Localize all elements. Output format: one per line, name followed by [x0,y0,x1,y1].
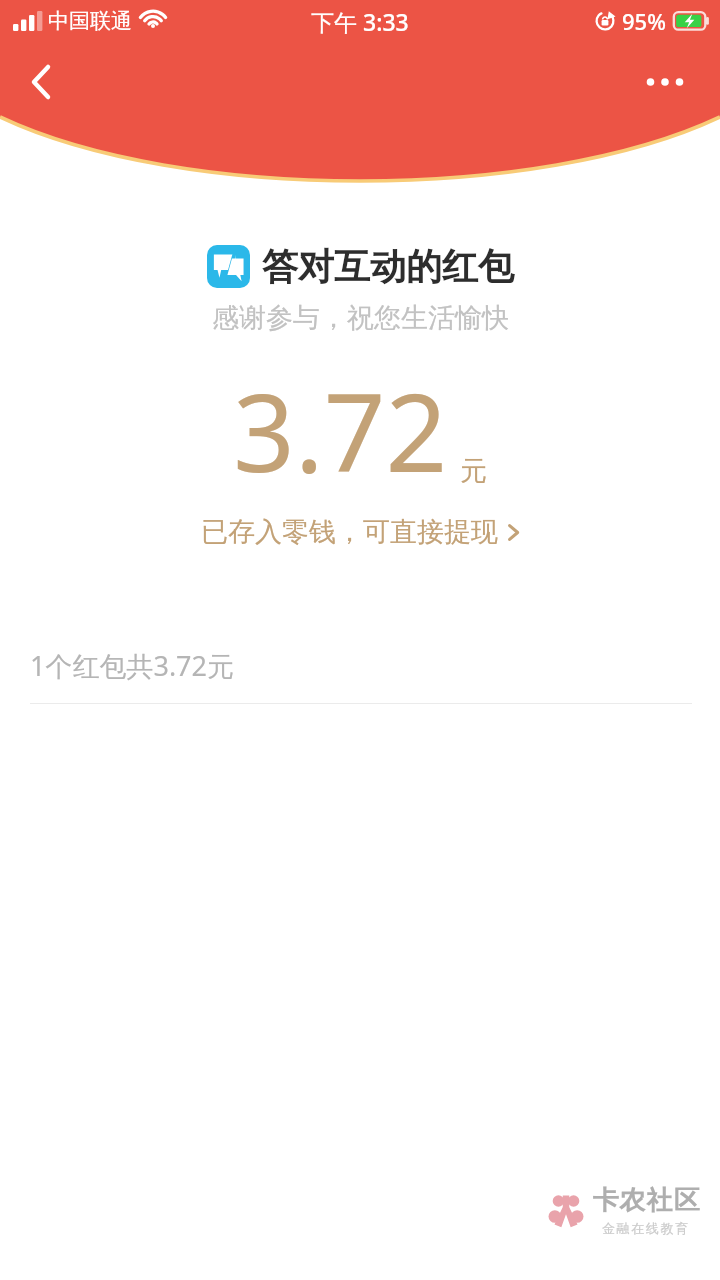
staticText: 已存入零钱，可直接提现 [201,515,498,549]
staticText: 中国联通 [48,8,132,34]
button[interactable]: 更多 [634,51,696,113]
staticText: 下午 3:33 [311,6,409,37]
staticText: 答对互动的红包 [262,244,514,289]
button[interactable]: 已存入零钱，可直接提现 [193,510,528,554]
staticText: 感谢参与，祝您生活愉快 [212,301,509,335]
staticText: 金融在线教育 [602,1220,690,1236]
button[interactable]: 返回 [10,51,72,113]
staticText: 3.72 [233,357,448,504]
staticText: 1个红包共3.72元 [30,647,235,684]
staticText: 元 [460,454,487,488]
staticText: 卡农社区 [592,1184,700,1217]
staticText: 95% [622,6,666,36]
